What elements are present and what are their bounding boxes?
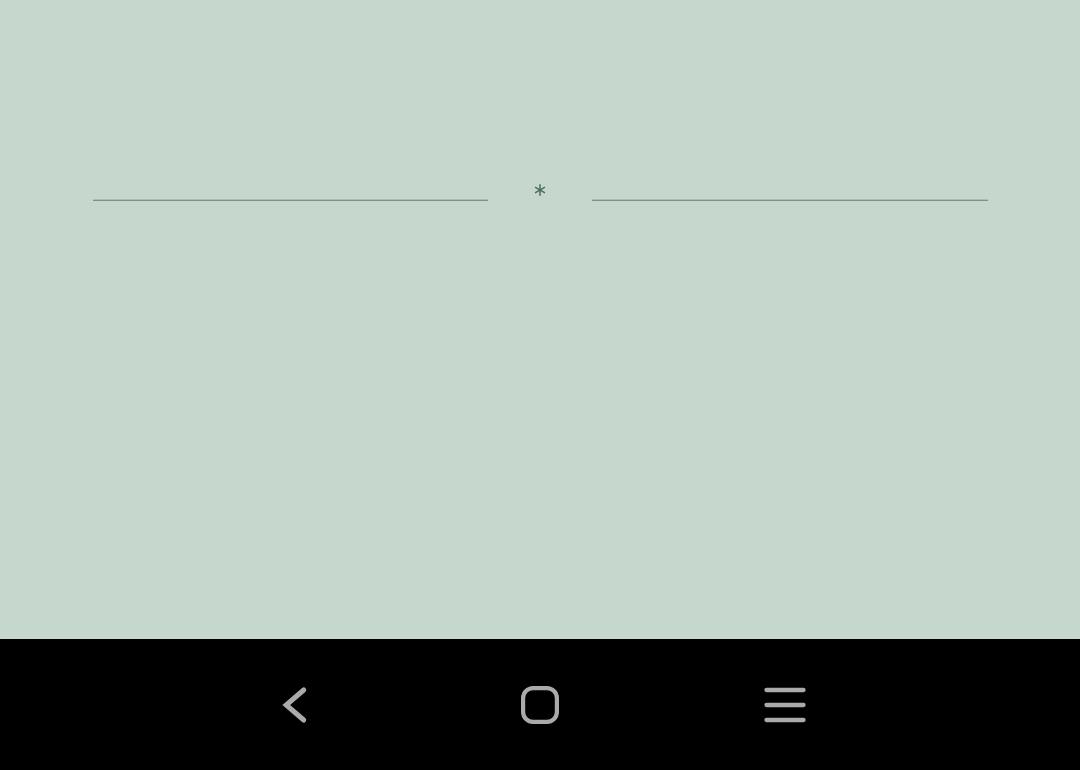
button[interactable]: First entry field: [93, 153, 488, 201]
button[interactable]: Back: [248, 657, 344, 753]
button[interactable]: Required field marker: [514, 164, 566, 216]
button[interactable]: Home: [492, 657, 588, 753]
button[interactable]: Recent apps: [737, 657, 833, 753]
button[interactable]: Second entry field: [592, 153, 988, 201]
